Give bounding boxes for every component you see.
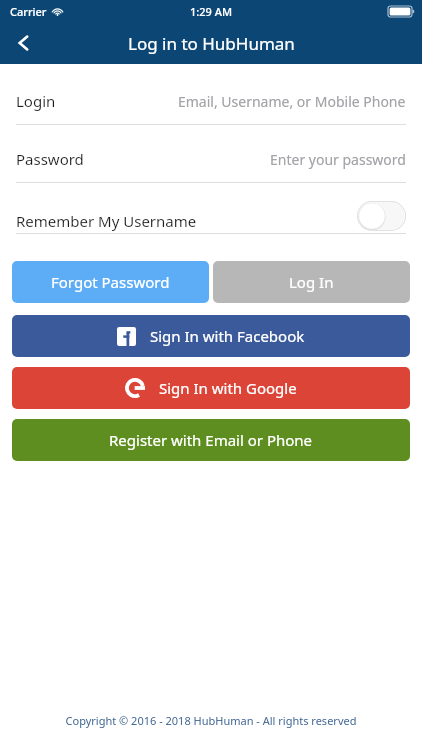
staticText: Register with Email or Phone <box>109 430 313 450</box>
button[interactable]: Back <box>4 23 44 63</box>
staticText: Sign In with Facebook <box>150 326 305 346</box>
staticText: Remember My Username <box>16 211 197 231</box>
staticText: Password <box>16 149 84 169</box>
other: Remember My Username toggle <box>357 201 406 231</box>
staticText: Log in to HubHuman <box>128 32 295 55</box>
button[interactable]: Sign In with Google <box>12 367 410 409</box>
button[interactable]: Forgot Password <box>12 261 209 303</box>
staticText: Forgot Password <box>51 272 170 292</box>
button[interactable]: Register with Email or Phone <box>12 419 410 461</box>
button[interactable]: Log In <box>213 261 410 303</box>
button[interactable]: Sign In with Facebook <box>12 315 410 357</box>
staticText: Sign In with Google <box>159 378 297 398</box>
staticText: Copyright © 2016 - 2018 HubHuman - All r… <box>0 713 422 728</box>
button[interactable]: Remember My Username <box>16 201 406 234</box>
staticText: 1:29 AM <box>190 4 233 19</box>
staticText: Enter your password <box>270 150 406 169</box>
staticText: Email, Username, or Mobile Phone <box>178 92 406 111</box>
staticText: Log In <box>289 272 334 292</box>
button[interactable]: Password <box>16 146 406 183</box>
button[interactable]: Login <box>16 88 406 125</box>
staticText: Carrier <box>10 4 47 19</box>
staticText: Login <box>16 91 56 111</box>
